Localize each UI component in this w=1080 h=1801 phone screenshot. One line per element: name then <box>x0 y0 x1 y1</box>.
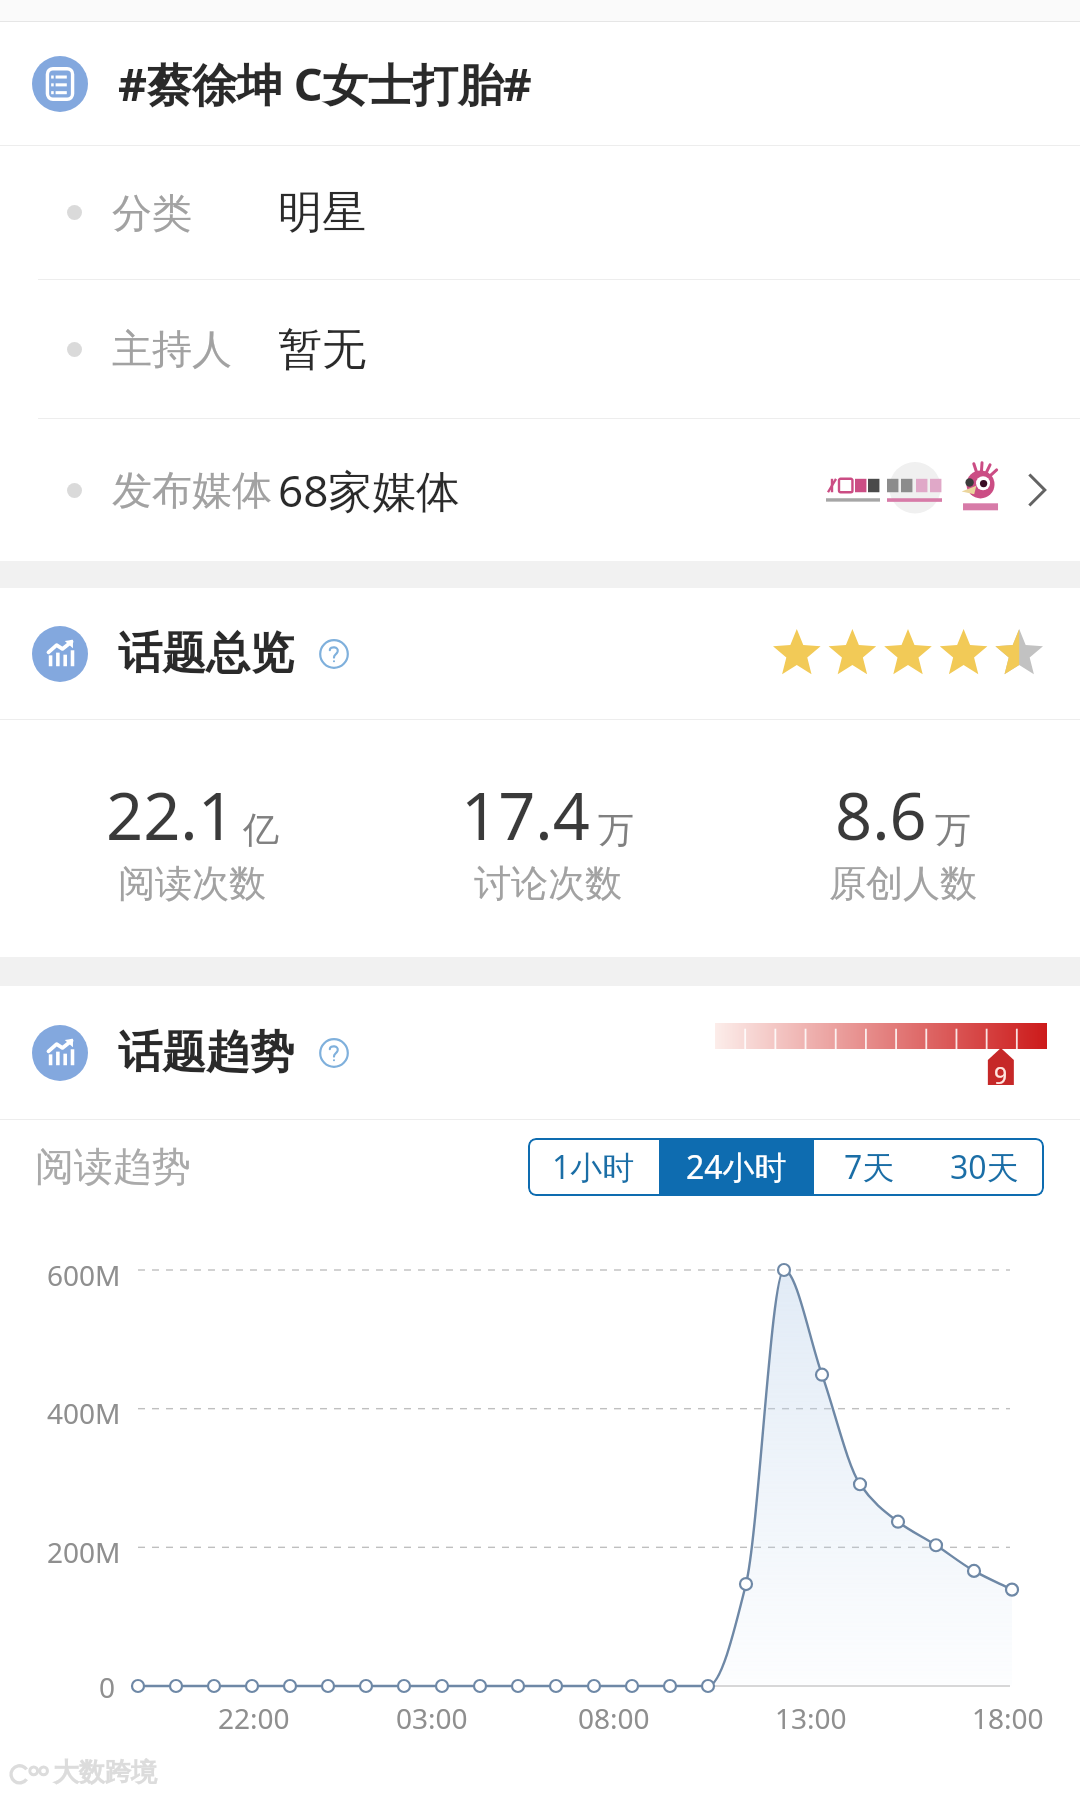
staticText: 话题趋势 <box>118 1025 294 1080</box>
staticText: 400M <box>47 1394 121 1432</box>
staticText: 明星 <box>278 185 366 240</box>
button[interactable]: 分类 <box>0 146 1080 279</box>
staticText: 大数跨境 <box>53 1756 157 1789</box>
button[interactable]: 发布媒体 <box>0 419 1080 561</box>
staticText: 万 <box>598 807 634 852</box>
staticText: 亿 <box>243 807 279 852</box>
button[interactable]: 8.6 <box>725 720 1080 957</box>
button[interactable]: 24小时 <box>659 1138 814 1196</box>
other: 更多媒体 <box>1014 468 1058 512</box>
button[interactable]: 主持人 <box>0 280 1080 418</box>
staticText: 7天 <box>844 1145 895 1189</box>
staticText: 原创人数 <box>829 860 977 907</box>
staticText: 0 <box>99 1668 116 1706</box>
staticText: 30天 <box>950 1145 1019 1189</box>
button[interactable]: 22.1 <box>14 720 370 957</box>
staticText: 阅读趋势 <box>35 1142 191 1191</box>
staticText: 暂无 <box>278 322 366 377</box>
staticText: 万 <box>935 807 971 852</box>
button[interactable]: 30天 <box>924 1138 1044 1196</box>
staticText: 08:00 <box>578 1699 650 1737</box>
staticText: 13:00 <box>775 1699 847 1737</box>
staticText: 主持人 <box>112 324 232 374</box>
button[interactable]: 17.4 <box>370 720 725 957</box>
staticText: 22:00 <box>218 1699 290 1737</box>
button[interactable]: 说明 <box>316 1035 352 1071</box>
button[interactable]: 话题趋势 <box>0 986 1080 1119</box>
staticText: 17.4 <box>461 771 590 860</box>
staticText: 1小时 <box>552 1145 635 1189</box>
staticText: 分类 <box>112 188 192 238</box>
button[interactable]: 话题总览 <box>0 588 1080 719</box>
staticText: 讨论次数 <box>474 860 622 907</box>
button[interactable]: 评分 4.5 星 <box>769 623 1047 685</box>
staticText: 9 <box>994 1059 1008 1090</box>
button[interactable]: #蔡徐坤 C女士打胎# <box>0 22 1080 145</box>
button[interactable]: 7天 <box>814 1138 924 1196</box>
staticText: 200M <box>47 1533 121 1571</box>
staticText: 22.1 <box>106 771 235 860</box>
staticText: #蔡徐坤 C女士打胎# <box>118 53 532 114</box>
staticText: 03:00 <box>396 1699 468 1737</box>
staticText: 68家媒体 <box>278 460 461 520</box>
staticText: 600M <box>47 1256 121 1294</box>
staticText: 阅读次数 <box>118 860 266 907</box>
button[interactable]: 1小时 <box>528 1138 659 1196</box>
button[interactable]: 热度指数 9 <box>715 997 1047 1109</box>
staticText: 话题总览 <box>118 626 294 681</box>
staticText: 24小时 <box>686 1145 787 1189</box>
staticText: 8.6 <box>835 771 927 860</box>
button[interactable]: 说明 <box>316 636 352 672</box>
staticText: 发布媒体 <box>112 465 272 515</box>
staticText: 18:00 <box>972 1699 1044 1737</box>
